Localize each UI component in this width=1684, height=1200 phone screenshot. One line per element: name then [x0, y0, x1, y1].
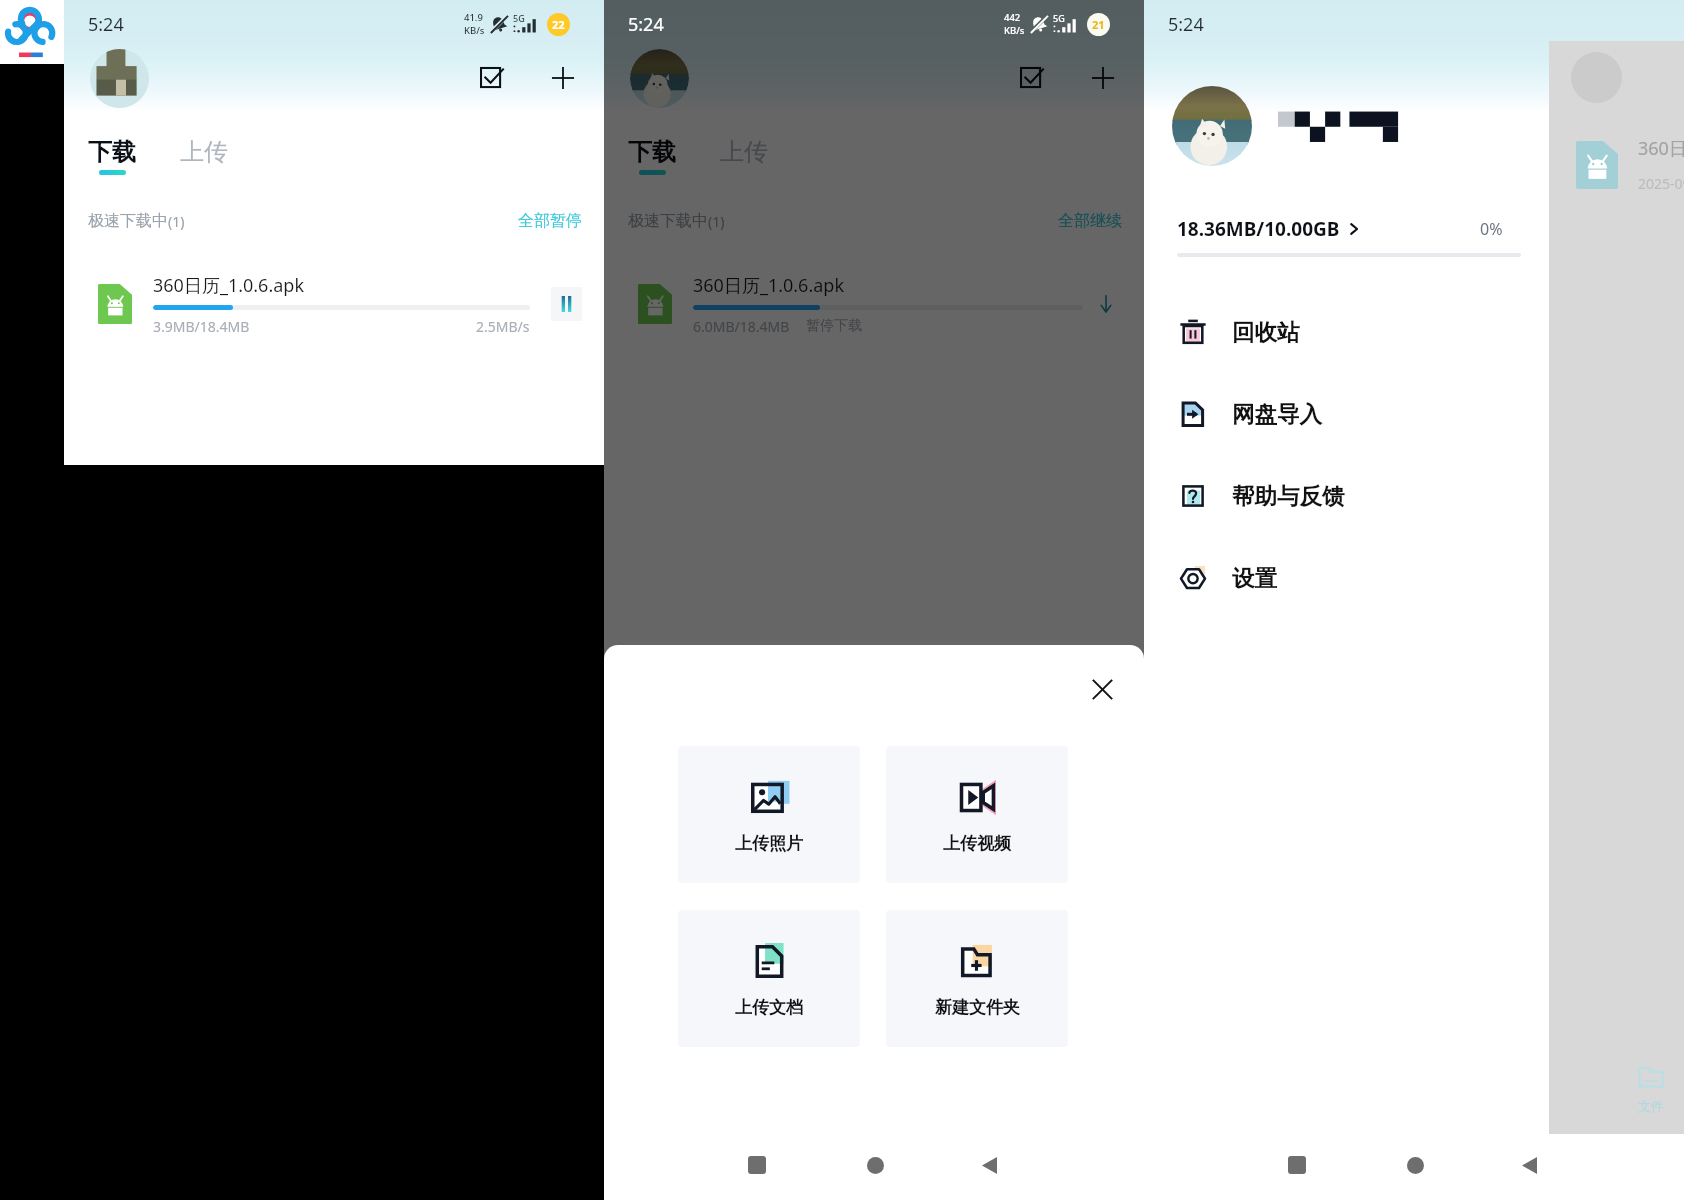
staticText: 5:24 — [88, 12, 124, 37]
staticText: 360日历_1.0.6.apk — [153, 273, 305, 298]
staticText: 上传 — [720, 137, 768, 167]
button[interactable]: 全部继续 — [1058, 211, 1122, 231]
staticText: 全部暂停 — [518, 211, 582, 231]
staticText: 5G — [513, 12, 525, 24]
staticText: 暂停下载 — [806, 317, 862, 335]
button[interactable]: 上传 — [720, 137, 768, 167]
staticText: 极速下载中 — [628, 211, 708, 231]
staticText: (1) — [708, 212, 725, 231]
staticText: 新建文件夹 — [935, 997, 1020, 1018]
staticText: 5:24 — [1168, 12, 1204, 37]
button[interactable]: 360日历_1.0.6.apk — [604, 265, 1144, 343]
button[interactable]: Home — [1395, 1145, 1435, 1185]
staticText: 2025-09-04 — [1638, 174, 1684, 193]
staticText: 下载 — [88, 137, 136, 167]
staticText: 上传 — [180, 137, 228, 167]
button[interactable]: 新建文件夹 — [886, 910, 1068, 1047]
staticText: 极速下载中 — [88, 211, 168, 231]
staticText: 360日历_1.0.6.apk — [693, 273, 845, 298]
staticText: 上传文档 — [735, 997, 803, 1018]
staticText: 0% — [1480, 218, 1503, 240]
staticText: 文件 — [1638, 1098, 1664, 1114]
button[interactable]: 帮助与反馈 — [1144, 455, 1549, 537]
button[interactable]: Recents — [1277, 1145, 1317, 1185]
button[interactable]: Add — [1080, 55, 1126, 101]
button[interactable]: Select — [469, 55, 515, 101]
staticText: 全部继续 — [1058, 211, 1122, 231]
button[interactable]: 全部暂停 — [518, 211, 582, 231]
staticText: 上传照片 — [735, 833, 803, 854]
button[interactable]: 回收站 — [1144, 291, 1549, 373]
staticText: 网盘导入 — [1232, 400, 1322, 428]
button[interactable]: Resume — [1089, 287, 1122, 321]
staticText: 上传视频 — [943, 833, 1011, 854]
staticText: 设置 — [1232, 564, 1277, 592]
button[interactable]: Back — [969, 1145, 1009, 1185]
button[interactable]: Recents — [737, 1145, 777, 1185]
staticText: 帮助与反馈 — [1232, 482, 1345, 510]
button[interactable]: 上传视频 — [886, 746, 1068, 883]
button[interactable]: 上传 — [180, 137, 228, 167]
button[interactable]: Add — [540, 55, 586, 101]
button[interactable]: 下载 — [88, 137, 136, 175]
button[interactable]: Profile — [630, 49, 689, 108]
staticText: 下载 — [628, 137, 676, 167]
button[interactable]: Close — [1079, 666, 1125, 712]
staticText: 5:24 — [628, 12, 664, 37]
button[interactable]: 文件 — [1620, 1063, 1682, 1114]
staticText: 6.0MB/18.4MB — [693, 317, 790, 336]
button[interactable]: 下载 — [628, 137, 676, 175]
staticText: KB/s — [464, 24, 485, 37]
button[interactable]: Select — [1009, 55, 1055, 101]
staticText: 360日历_1.0.6.apk — [1638, 136, 1684, 161]
button[interactable]: Home — [855, 1145, 895, 1185]
button[interactable]: 上传文档 — [678, 910, 860, 1047]
staticText: KB/s — [1004, 24, 1025, 37]
button[interactable]: 上传照片 — [678, 746, 860, 883]
staticText: 18.36MB/10.00GB — [1177, 216, 1340, 242]
button[interactable]: Profile — [90, 49, 149, 108]
button[interactable]: 设置 — [1144, 537, 1549, 619]
button[interactable]: Back — [1509, 1145, 1549, 1185]
staticText: 5G — [1053, 12, 1065, 24]
button[interactable]: 360日历_1.0.6.apk — [64, 265, 604, 343]
button[interactable]: 18.36MB/10.00GB — [1177, 216, 1503, 242]
staticText: 442 — [1004, 11, 1021, 24]
staticText: 3.9MB/18.4MB — [153, 317, 250, 336]
staticText: 回收站 — [1232, 318, 1300, 346]
staticText: 41.9 — [464, 11, 483, 24]
staticText: 2.5MB/s — [476, 317, 530, 336]
button[interactable]: Pause — [551, 287, 582, 321]
staticText: 22 — [552, 17, 565, 32]
staticText: (1) — [168, 212, 185, 231]
staticText: 21 — [1092, 17, 1105, 32]
button[interactable]: 网盘导入 — [1144, 373, 1549, 455]
